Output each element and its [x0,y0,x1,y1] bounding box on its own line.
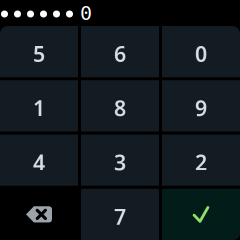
staticText: 0 [80,2,92,24]
staticText: 0 [195,39,207,68]
button[interactable]: Delete [0,189,78,240]
staticText: 3 [114,148,126,176]
button[interactable]: 4 [0,134,78,186]
button[interactable]: 1 [0,80,78,131]
staticText: 1 [33,94,45,122]
staticText: 8 [114,94,126,122]
staticText: 5 [33,39,45,68]
staticText: 9 [195,94,207,122]
staticText: 4 [33,148,45,176]
button[interactable]: 2 [162,134,240,186]
staticText: 6 [114,39,126,68]
button[interactable]: 7 [81,189,159,240]
button[interactable]: Confirm passcode [162,189,240,240]
button[interactable]: 6 [81,26,159,77]
staticText: 2 [195,148,207,176]
button[interactable]: 3 [81,134,159,186]
button[interactable]: 5 [0,26,78,77]
staticText: 7 [114,202,126,230]
button[interactable]: 9 [162,80,240,131]
button[interactable]: 8 [81,80,159,131]
button[interactable]: 0 [162,26,240,77]
